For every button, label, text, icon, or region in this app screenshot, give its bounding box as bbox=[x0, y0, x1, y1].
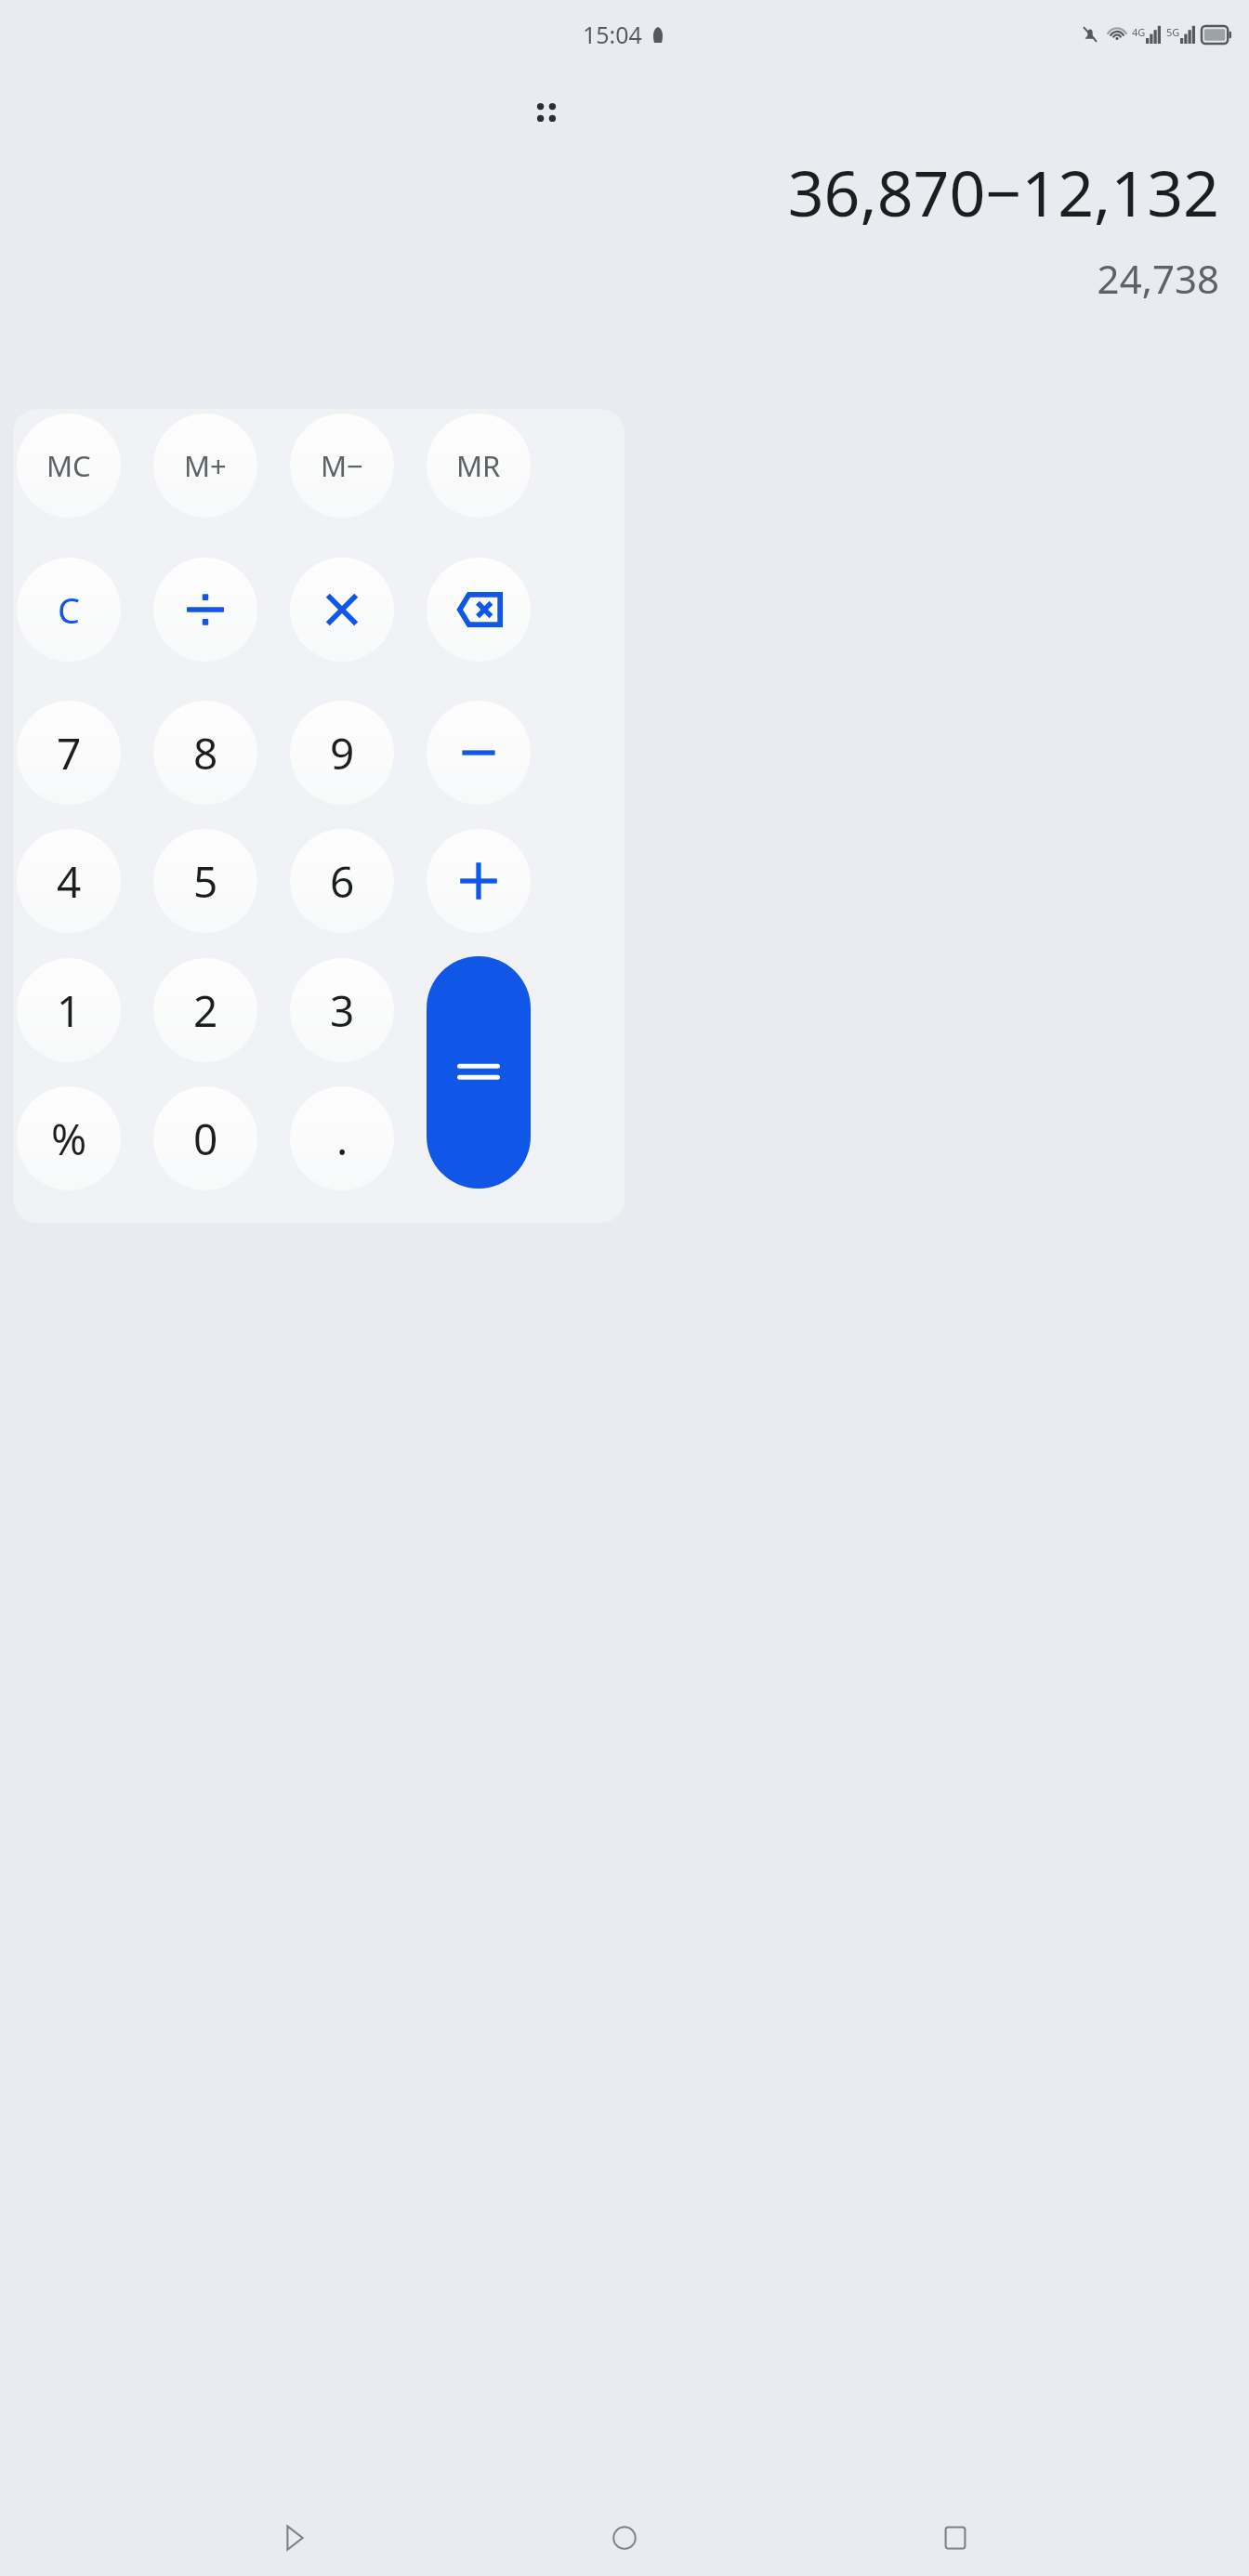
button[interactable]: M+ bbox=[153, 414, 257, 518]
button[interactable]: 7 bbox=[17, 701, 121, 805]
button[interactable] bbox=[427, 829, 531, 933]
staticText: MR bbox=[456, 446, 501, 485]
staticText: M+ bbox=[184, 446, 227, 485]
button[interactable]: 6 bbox=[290, 829, 394, 933]
button[interactable] bbox=[153, 558, 257, 662]
staticText: 7 bbox=[57, 724, 82, 782]
button[interactable] bbox=[427, 701, 531, 805]
staticText: 4 bbox=[57, 852, 82, 911]
button[interactable]: 1 bbox=[17, 958, 121, 1062]
button[interactable]: . bbox=[290, 1086, 394, 1190]
button[interactable]: Backspace bbox=[427, 558, 531, 662]
staticText: 5 bbox=[193, 852, 218, 911]
button[interactable]: 9 bbox=[290, 701, 394, 805]
button[interactable]: Recents bbox=[918, 2501, 993, 2575]
button[interactable]: 4 bbox=[17, 829, 121, 933]
staticText: 1 bbox=[57, 981, 82, 1040]
button[interactable]: % bbox=[17, 1086, 121, 1190]
staticText: 0 bbox=[193, 1110, 218, 1168]
button[interactable]: C bbox=[17, 558, 121, 662]
button[interactable]: 2 bbox=[153, 958, 257, 1062]
staticText: 15:04 bbox=[583, 19, 642, 50]
staticText: 8 bbox=[193, 724, 218, 782]
staticText: M− bbox=[321, 446, 363, 485]
button[interactable]: 8 bbox=[153, 701, 257, 805]
staticText: 4G bbox=[1132, 25, 1146, 39]
button[interactable]: M− bbox=[290, 414, 394, 518]
staticText: MC bbox=[46, 446, 91, 485]
button[interactable]: More options bbox=[517, 83, 576, 142]
staticText: 9 bbox=[330, 724, 355, 782]
button[interactable]: Back bbox=[256, 2501, 331, 2575]
staticText: . bbox=[336, 1110, 348, 1168]
staticText: 6 bbox=[330, 852, 355, 911]
staticText: C bbox=[58, 585, 81, 634]
staticText: 5G bbox=[1166, 25, 1180, 39]
staticText: 36,870−12,132 bbox=[787, 149, 1219, 235]
staticText: % bbox=[51, 1110, 87, 1168]
button[interactable]: MC bbox=[17, 414, 121, 518]
button[interactable]: 5 bbox=[153, 829, 257, 933]
button[interactable]: Home bbox=[587, 2501, 662, 2575]
button[interactable]: 3 bbox=[290, 958, 394, 1062]
staticText: 3 bbox=[330, 981, 355, 1040]
button[interactable] bbox=[290, 558, 394, 662]
staticText: 2 bbox=[193, 981, 218, 1040]
button[interactable]: 0 bbox=[153, 1086, 257, 1190]
button[interactable]: Equals bbox=[427, 956, 531, 1189]
button[interactable]: MR bbox=[427, 414, 531, 518]
staticText: 24,738 bbox=[1097, 252, 1219, 305]
